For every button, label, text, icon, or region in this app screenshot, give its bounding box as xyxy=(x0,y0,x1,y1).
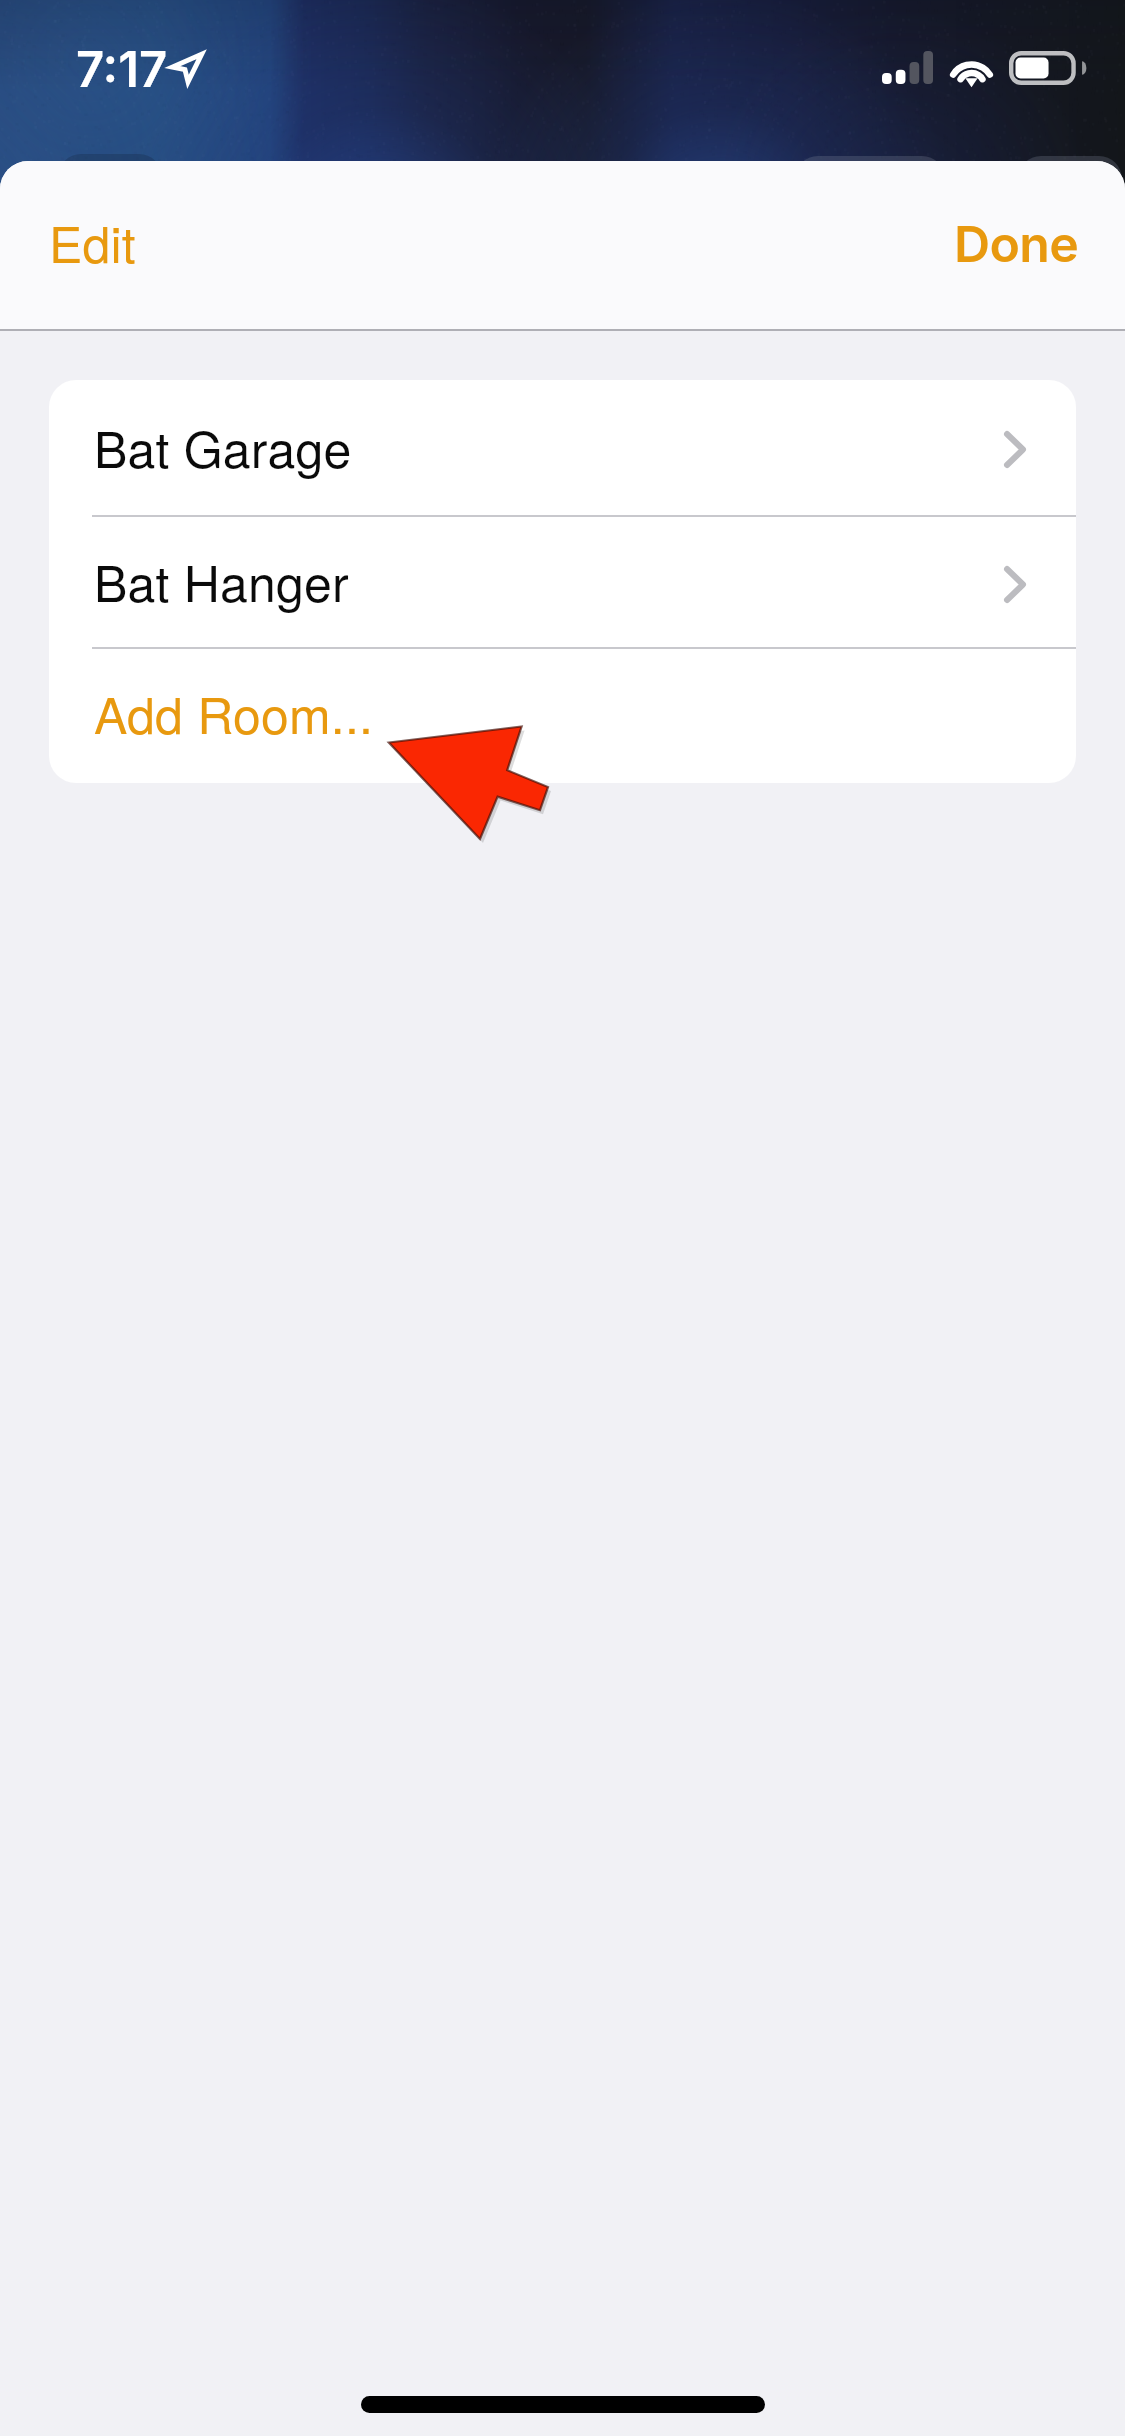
other: Location services active xyxy=(170,52,204,84)
other: Wi-Fi connected xyxy=(948,50,995,85)
staticText: Edit xyxy=(49,206,136,278)
button[interactable]: Add Room... xyxy=(49,649,1076,783)
button[interactable]: Bat Garage xyxy=(49,380,1076,515)
button[interactable]: Bat Hanger xyxy=(49,517,1076,647)
other: Open Bat Hanger xyxy=(1004,566,1026,603)
staticText: Bat Hanger xyxy=(94,545,349,617)
staticText: Add Room... xyxy=(94,677,374,749)
button[interactable]: Done xyxy=(924,190,1125,298)
other: Battery xyxy=(1009,51,1084,85)
other: Open Bat Garage xyxy=(1004,431,1026,468)
staticText: 7:17 xyxy=(76,40,168,99)
staticText: Done xyxy=(954,214,1079,274)
other: Cellular signal two bars xyxy=(882,51,933,84)
staticText: Bat Garage xyxy=(94,411,352,483)
button[interactable]: Edit xyxy=(0,182,166,302)
